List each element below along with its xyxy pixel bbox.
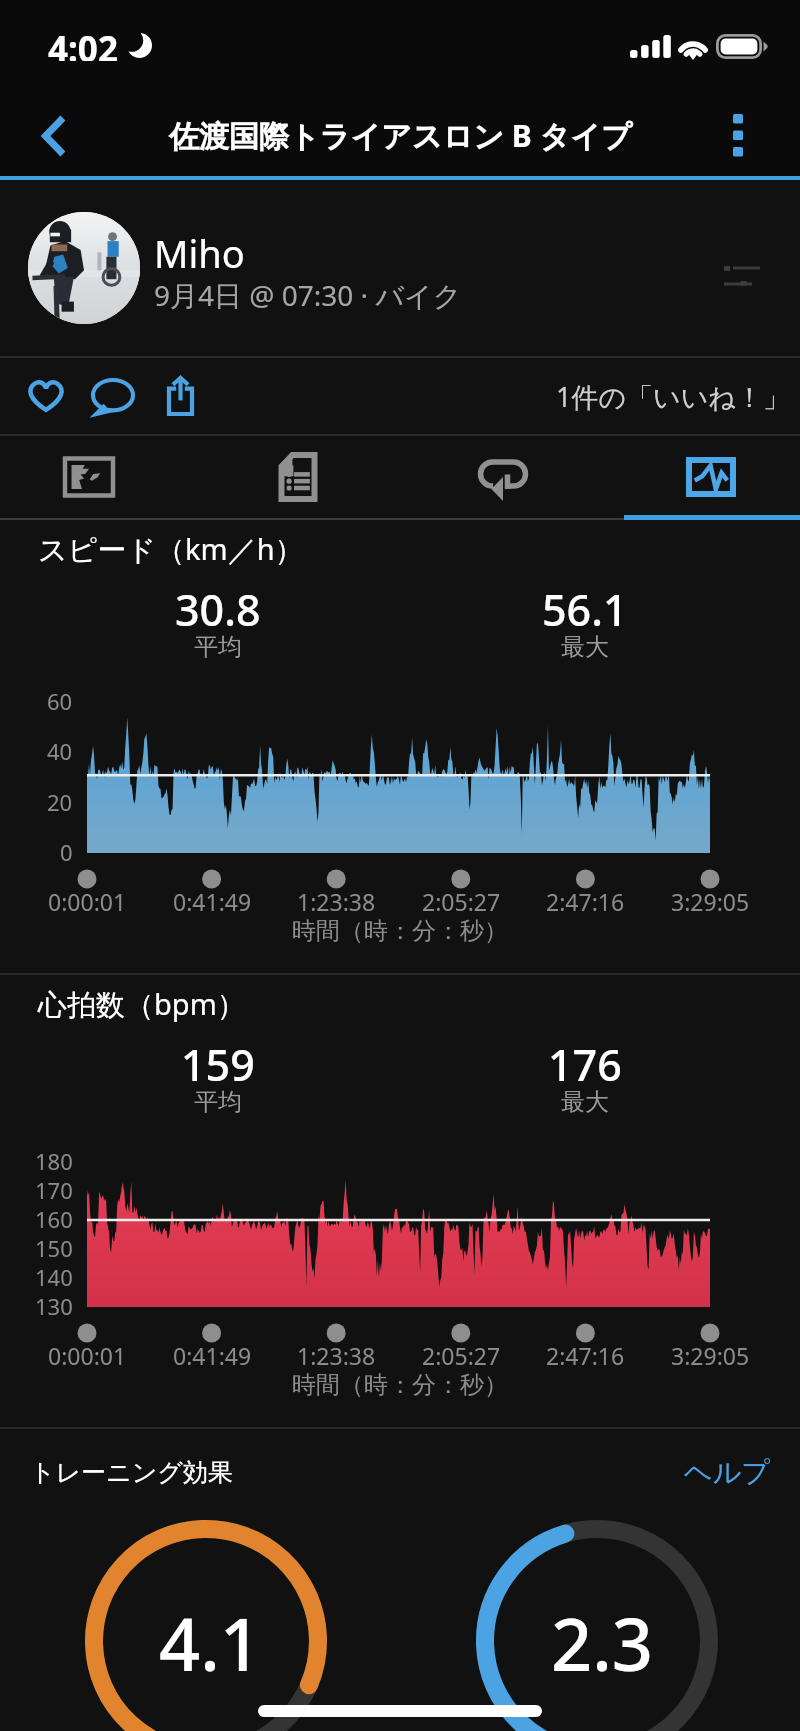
staticText: 最大 [561,1087,609,1115]
staticText: 2.3 [551,1594,653,1692]
staticText: 最大 [561,632,609,660]
button[interactable]: Miho [0,180,800,356]
staticText: 時間（時：分：秒） [292,916,508,946]
staticText: 1件の「いいね！」 [556,378,790,415]
staticText: 159 [181,1035,255,1081]
button[interactable]: ヘルプ [682,1453,772,1492]
button[interactable]: Activity options [712,238,772,298]
button[interactable]: Comment [73,358,151,434]
staticText: 0:00:01 [48,886,127,916]
staticText: 2:47:16 [546,1340,625,1370]
staticText: 4:02 [48,25,118,61]
staticText: 2:47:16 [546,886,625,916]
staticText: 心拍数（bpm） [38,984,246,1024]
staticText: 0:00:01 [48,1340,127,1370]
button[interactable]: Map [0,436,178,520]
staticText: 140 [35,1262,73,1292]
staticText: スピード（km／h） [38,529,304,569]
button[interactable]: Details [190,436,406,520]
staticText: トレーニング効果 [30,1457,233,1488]
button[interactable]: Laps [394,436,612,520]
staticText: 56.1 [542,580,628,626]
staticText: 1:23:38 [297,1340,376,1370]
staticText: 30.8 [175,580,261,626]
staticText: 150 [35,1233,73,1263]
staticText: 0 [60,837,73,867]
staticText: 2:05:27 [422,1340,501,1370]
staticText: ヘルプ [684,1455,770,1490]
staticText: 130 [35,1291,73,1321]
staticText: 60 [47,686,73,716]
staticText: 佐渡国際トライアスロン B タイプ [169,115,632,156]
staticText: 170 [35,1175,73,1205]
staticText: 0:41:49 [173,886,252,916]
staticText: 3:29:05 [671,886,750,916]
button[interactable]: More options [712,92,800,180]
staticText: 176 [548,1035,622,1081]
staticText: 平均 [194,1087,242,1115]
button[interactable]: Share [140,358,218,434]
staticText: 9月4日 @ 07:30 · バイク [154,276,462,314]
staticText: 平均 [194,632,242,660]
staticText: 20 [47,787,73,817]
button[interactable]: Back [0,92,104,180]
staticText: 180 [35,1146,73,1176]
staticText: 2:05:27 [422,886,501,916]
staticText: 4.1 [159,1594,261,1692]
staticText: Miho [154,227,245,279]
staticText: 40 [47,736,73,766]
staticText: 160 [35,1204,73,1234]
button[interactable]: Charts [616,436,800,520]
button[interactable]: Like [6,358,84,434]
staticText: 時間（時：分：秒） [292,1370,508,1400]
staticText: 1:23:38 [297,886,376,916]
staticText: 3:29:05 [671,1340,750,1370]
staticText: 0:41:49 [173,1340,252,1370]
